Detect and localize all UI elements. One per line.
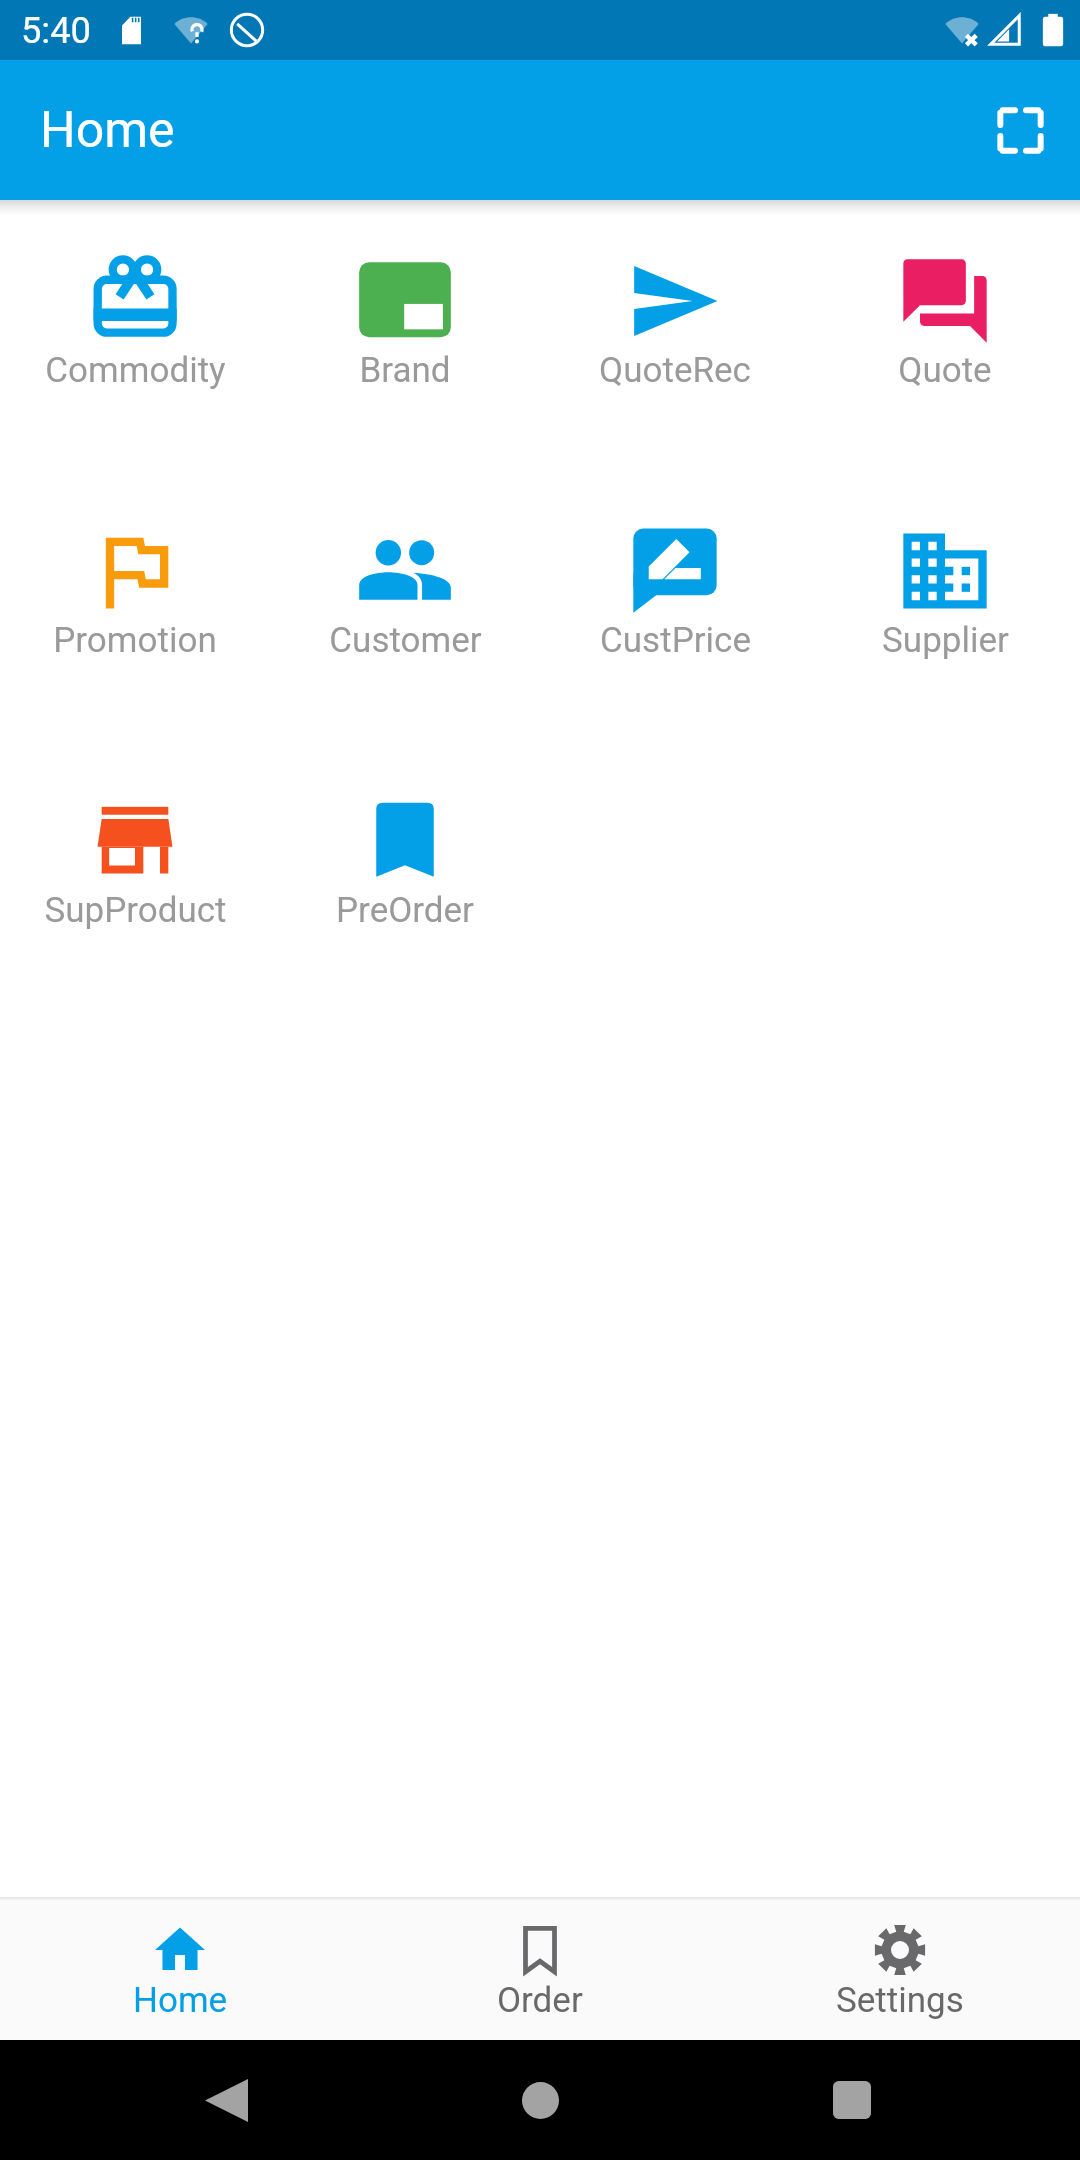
button[interactable]: Home: [505, 2065, 575, 2135]
button[interactable]: Promotion: [0, 470, 270, 740]
button[interactable]: QuoteRec: [540, 200, 810, 470]
staticText: Home: [133, 1980, 228, 2021]
staticText: Supplier: [882, 620, 1009, 661]
staticText: Quote: [898, 350, 992, 391]
button[interactable]: Quote: [810, 200, 1080, 470]
button[interactable]: SupProduct: [0, 740, 270, 1010]
button[interactable]: Home: [0, 1897, 360, 2040]
staticText: PreOrder: [336, 890, 474, 931]
staticText: Promotion: [53, 620, 217, 661]
button[interactable]: Supplier: [810, 470, 1080, 740]
button[interactable]: Commodity: [0, 200, 270, 470]
button[interactable]: Back: [191, 2065, 261, 2135]
staticText: Order: [497, 1980, 583, 2021]
button[interactable]: Customer: [270, 470, 540, 740]
staticText: QuoteRec: [599, 350, 751, 391]
staticText: 5:40: [21, 9, 91, 51]
staticText: Customer: [329, 620, 482, 661]
button[interactable]: PreOrder: [270, 740, 540, 1010]
button[interactable]: Settings: [720, 1897, 1080, 2040]
staticText: SupProduct: [44, 890, 227, 931]
button[interactable]: Brand: [270, 200, 540, 470]
button[interactable]: Scan: [970, 80, 1070, 180]
button[interactable]: Recents: [817, 2065, 887, 2135]
staticText: Settings: [836, 1980, 964, 2021]
staticText: CustPrice: [600, 620, 751, 661]
staticText: Commodity: [45, 350, 226, 391]
button[interactable]: CustPrice: [540, 470, 810, 740]
staticText: Brand: [359, 350, 451, 391]
button[interactable]: Order: [360, 1897, 720, 2040]
staticText: Home: [40, 101, 175, 160]
